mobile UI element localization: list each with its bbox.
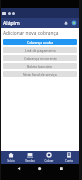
button[interactable]: Cobrança recorrente: [3, 55, 77, 61]
staticText: Alápim: [3, 20, 20, 27]
staticText: Cobrança recorrente: [24, 56, 57, 61]
button[interactable]: New tab: [8, 12, 11, 15]
button[interactable]: Boleto bancário: [3, 63, 77, 69]
staticText: Cobrar: [44, 159, 54, 163]
staticText: Adicionar nova cobrança: [3, 30, 59, 37]
staticText: Cobrança avulsa: [27, 40, 54, 45]
button[interactable]: Site information: [63, 20, 69, 26]
button[interactable]: Cobrança avulsa: [3, 39, 77, 45]
button[interactable]: Nota fiscal de serviço: [3, 71, 77, 77]
button[interactable]: Conta: [59, 151, 79, 164]
staticText: Conta: [65, 159, 73, 163]
button[interactable]: Reload page: [71, 20, 77, 26]
staticText: Boleto bancário: [27, 64, 53, 69]
button[interactable]: More options: [12, 12, 15, 15]
button[interactable]: Vendas: [20, 151, 39, 164]
button[interactable]: Início: [1, 151, 20, 164]
button[interactable]: Link de pagamento: [3, 47, 77, 53]
button[interactable]: Cobrar: [39, 151, 59, 164]
button[interactable]: Tabs: [2, 12, 6, 15]
staticText: Início: [7, 159, 15, 163]
staticText: Vendas: [25, 159, 35, 163]
staticText: Nota fiscal de serviço: [23, 72, 57, 77]
staticText: Link de pagamento: [25, 48, 56, 53]
